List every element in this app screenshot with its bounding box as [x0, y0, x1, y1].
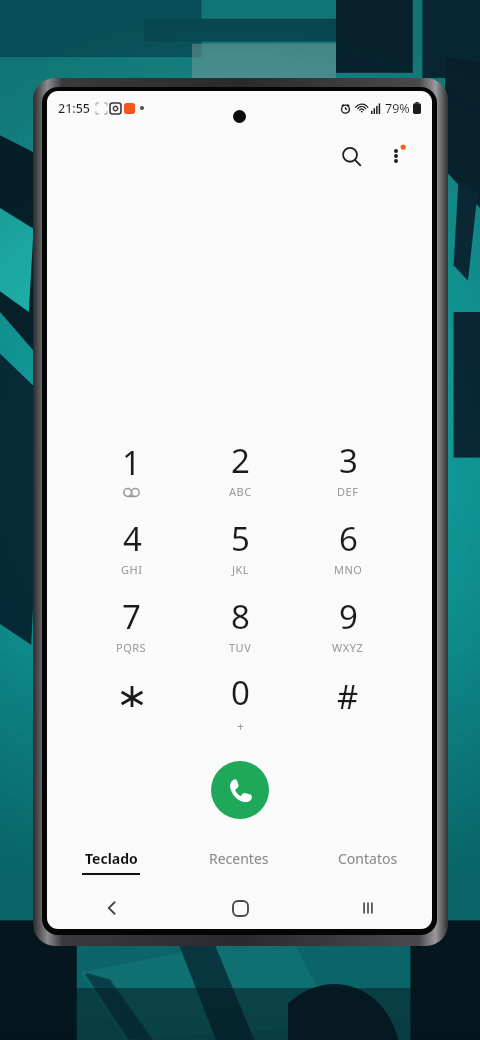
staticText: +	[237, 718, 245, 734]
button[interactable]: 3	[294, 429, 402, 507]
staticText: Contatos	[338, 849, 398, 868]
button[interactable]	[77, 663, 186, 741]
staticText: PQRS	[116, 640, 147, 655]
staticText: 2	[231, 438, 250, 483]
staticText: 7	[122, 594, 141, 639]
button[interactable]: 8	[186, 585, 294, 663]
button[interactable]: Recentes	[199, 845, 279, 872]
button[interactable]: 0	[186, 663, 294, 741]
staticText: DEF	[337, 484, 359, 499]
button[interactable]: 6	[294, 507, 402, 585]
staticText: 0	[231, 670, 250, 715]
button[interactable]: #	[294, 663, 402, 741]
staticText: 3	[339, 438, 358, 483]
button[interactable]: Back	[47, 893, 176, 923]
staticText: 1	[122, 440, 141, 485]
staticText: GHI	[121, 562, 143, 577]
button[interactable]: Call	[211, 761, 269, 819]
button[interactable]: Home	[176, 893, 304, 923]
button[interactable]: Search	[328, 133, 374, 179]
button[interactable]: Teclado	[72, 845, 150, 879]
staticText: 6	[339, 516, 358, 561]
button[interactable]: 7	[77, 585, 186, 663]
staticText: JKL	[232, 562, 250, 577]
button[interactable]: Recent apps	[304, 893, 432, 923]
staticText: WXYZ	[332, 640, 364, 655]
staticText: 21:55	[58, 100, 91, 117]
button[interactable]: 2	[186, 429, 294, 507]
staticText: Teclado	[85, 849, 138, 868]
button[interactable]: 4	[77, 507, 186, 585]
staticText: 8	[231, 594, 250, 639]
staticText: 79%	[385, 100, 410, 117]
staticText: 5	[231, 516, 250, 561]
staticText: 9	[339, 594, 358, 639]
button[interactable]: 9	[294, 585, 402, 663]
staticText: TUV	[229, 640, 252, 655]
button[interactable]: More options	[374, 134, 418, 178]
staticText: ABC	[229, 484, 252, 499]
staticText: MNO	[334, 562, 363, 577]
button[interactable]: 1	[77, 429, 186, 507]
button[interactable]: 5	[186, 507, 294, 585]
staticText: Recentes	[209, 849, 269, 868]
staticText: 4	[123, 516, 142, 561]
staticText: #	[337, 674, 359, 719]
button[interactable]: Contatos	[328, 845, 408, 872]
